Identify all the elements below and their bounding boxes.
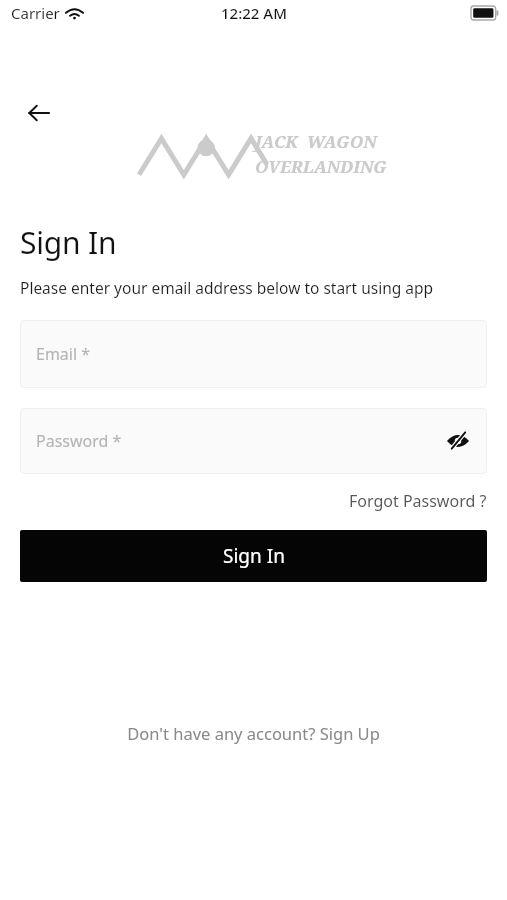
staticText: Forgot Password ? — [349, 490, 487, 512]
button[interactable]: Show password — [441, 424, 475, 458]
button[interactable]: Forgot Password ? — [349, 488, 487, 514]
staticText: Carrier — [11, 3, 60, 23]
staticText: Please enter your email address below to… — [20, 277, 434, 298]
staticText: 12:22 AM — [221, 3, 287, 23]
staticText: Password * — [36, 430, 122, 452]
button[interactable]: Email * — [20, 320, 487, 388]
staticText: Don't have any account? Sign Up — [127, 722, 380, 744]
button[interactable]: Password * — [20, 408, 487, 474]
staticText: Sign In — [223, 543, 285, 569]
button[interactable]: Sign In — [20, 530, 487, 582]
button[interactable]: Don't have any account? Sign Up — [119, 718, 388, 748]
staticText: Email * — [36, 343, 91, 365]
staticText: JACK WAGON — [255, 130, 377, 153]
staticText: OVERLANDING — [255, 155, 387, 178]
button[interactable]: Back — [20, 94, 58, 132]
staticText: Sign In — [20, 222, 117, 263]
